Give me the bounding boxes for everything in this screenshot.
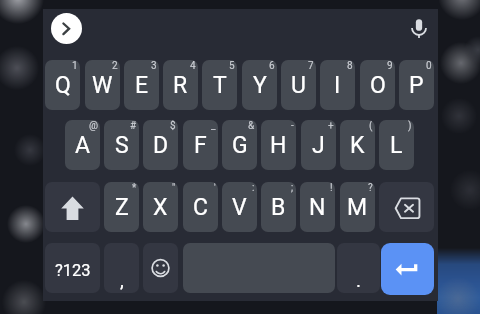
staticText: ! bbox=[330, 182, 333, 194]
staticText: U bbox=[291, 72, 306, 99]
staticText: 4 bbox=[190, 60, 196, 72]
staticText: S bbox=[115, 132, 129, 159]
button[interactable]: Voice input bbox=[404, 13, 434, 43]
button[interactable]: 9 bbox=[360, 60, 395, 110]
staticText: G bbox=[232, 132, 248, 159]
button[interactable]: # bbox=[104, 120, 139, 170]
button[interactable]: Show suggestions bbox=[51, 13, 82, 44]
staticText: 8 bbox=[347, 60, 353, 72]
staticText: + bbox=[328, 120, 334, 132]
staticText: B bbox=[271, 194, 286, 221]
button[interactable]: . bbox=[337, 243, 380, 293]
staticText: ? bbox=[368, 182, 373, 194]
staticText: Q bbox=[55, 72, 71, 99]
button[interactable]: * bbox=[104, 182, 139, 232]
staticText: 3 bbox=[151, 60, 157, 72]
staticText: A bbox=[75, 132, 91, 159]
staticText: _ bbox=[211, 120, 216, 132]
staticText: Z bbox=[115, 194, 129, 221]
button[interactable]: _ bbox=[183, 120, 218, 170]
staticText: P bbox=[409, 72, 424, 99]
button[interactable]: ! bbox=[300, 182, 335, 232]
button[interactable]: 7 bbox=[281, 60, 316, 110]
staticText: & bbox=[248, 120, 255, 132]
button[interactable]: Shift bbox=[45, 182, 100, 232]
button[interactable]: Backspace bbox=[379, 182, 434, 232]
staticText: H bbox=[270, 132, 287, 159]
button[interactable]: 5 bbox=[202, 60, 237, 110]
staticText: W bbox=[92, 72, 113, 99]
button[interactable]: ?123 bbox=[45, 243, 100, 293]
staticText: E bbox=[135, 72, 149, 99]
staticText: @ bbox=[89, 120, 98, 132]
button[interactable]: " bbox=[143, 182, 178, 232]
staticText: 0 bbox=[426, 60, 432, 72]
staticText: D bbox=[153, 132, 169, 159]
staticText: # bbox=[130, 120, 137, 132]
staticText: X bbox=[153, 194, 168, 221]
staticText: N bbox=[309, 194, 326, 221]
staticText: I bbox=[334, 72, 341, 99]
button[interactable]: ? bbox=[340, 182, 375, 232]
staticText: 5 bbox=[229, 60, 235, 72]
staticText: 1 bbox=[72, 60, 78, 72]
staticText: F bbox=[194, 132, 207, 159]
staticText: . bbox=[356, 269, 362, 291]
staticText: - bbox=[291, 120, 294, 132]
staticText: ( bbox=[369, 120, 373, 132]
staticText: : bbox=[252, 182, 255, 194]
staticText: * bbox=[132, 182, 137, 194]
button[interactable]: ; bbox=[261, 182, 296, 232]
staticText: ; bbox=[291, 182, 294, 194]
staticText: 7 bbox=[308, 60, 314, 72]
button[interactable]: - bbox=[261, 120, 296, 170]
button[interactable]: 6 bbox=[242, 60, 277, 110]
button[interactable]: ) bbox=[379, 120, 414, 170]
button[interactable]: 3 bbox=[124, 60, 159, 110]
staticText: ' bbox=[214, 182, 216, 194]
staticText: , bbox=[120, 269, 124, 291]
staticText: ?123 bbox=[55, 261, 91, 280]
button[interactable]: + bbox=[301, 120, 336, 170]
staticText: 9 bbox=[387, 60, 393, 72]
button[interactable]: 1 bbox=[45, 60, 80, 110]
button[interactable]: & bbox=[222, 120, 257, 170]
staticText: V bbox=[232, 194, 247, 221]
button[interactable]: 0 bbox=[399, 60, 434, 110]
staticText: 2 bbox=[112, 60, 118, 72]
staticText: L bbox=[390, 132, 403, 159]
button[interactable]: Enter bbox=[381, 243, 434, 295]
button[interactable]: 2 bbox=[85, 60, 120, 110]
button[interactable]: ' bbox=[183, 182, 218, 232]
staticText: M bbox=[347, 194, 368, 221]
staticText: $ bbox=[170, 120, 176, 132]
button[interactable]: Emoji bbox=[143, 243, 178, 293]
staticText: K bbox=[350, 132, 365, 159]
button[interactable]: ( bbox=[340, 120, 375, 170]
staticText: ) bbox=[408, 120, 412, 132]
button[interactable]: 4 bbox=[163, 60, 198, 110]
staticText: " bbox=[172, 182, 176, 194]
button[interactable]: , bbox=[104, 243, 139, 293]
button[interactable]: @ bbox=[65, 120, 100, 170]
staticText: C bbox=[193, 194, 208, 221]
staticText: 6 bbox=[269, 60, 275, 72]
button[interactable]: : bbox=[222, 182, 257, 232]
staticText: T bbox=[213, 72, 227, 99]
staticText: Y bbox=[253, 72, 267, 99]
button[interactable]: 8 bbox=[320, 60, 355, 110]
staticText: O bbox=[370, 72, 386, 99]
staticText: R bbox=[173, 72, 188, 99]
staticText: J bbox=[312, 132, 325, 159]
button[interactable]: $ bbox=[143, 120, 178, 170]
